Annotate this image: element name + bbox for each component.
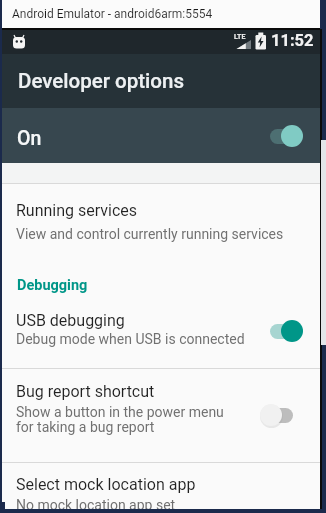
button[interactable]: Running services [0,184,320,262]
staticText: LTE [234,33,246,41]
staticText: No mock location app set [16,497,176,513]
staticText: Select mock location app [16,475,196,494]
button[interactable]: On [0,108,326,164]
button[interactable] [260,403,295,427]
staticText: USB debugging [16,311,125,330]
staticText: Running services [16,201,138,220]
staticText: Developer options [18,69,185,93]
staticText: On [17,127,42,150]
staticText: Show a button in the power menu [16,404,224,420]
staticText: Debug mode when USB is connected [16,331,245,347]
button[interactable]: Bug report shortcut [0,369,320,461]
staticText: Android Emulator - android6arm:5554 [12,7,213,21]
staticText: Debugging [17,277,88,294]
staticText: for taking a bug report [16,419,155,435]
staticText: Bug report shortcut [16,382,155,401]
staticText: View and control currently running servi… [16,226,284,242]
staticText: 11:52 [271,31,314,50]
button[interactable] [268,124,303,148]
button[interactable] [268,319,303,343]
button[interactable]: Select mock location app [0,463,320,509]
button[interactable]: USB debugging [0,299,320,363]
